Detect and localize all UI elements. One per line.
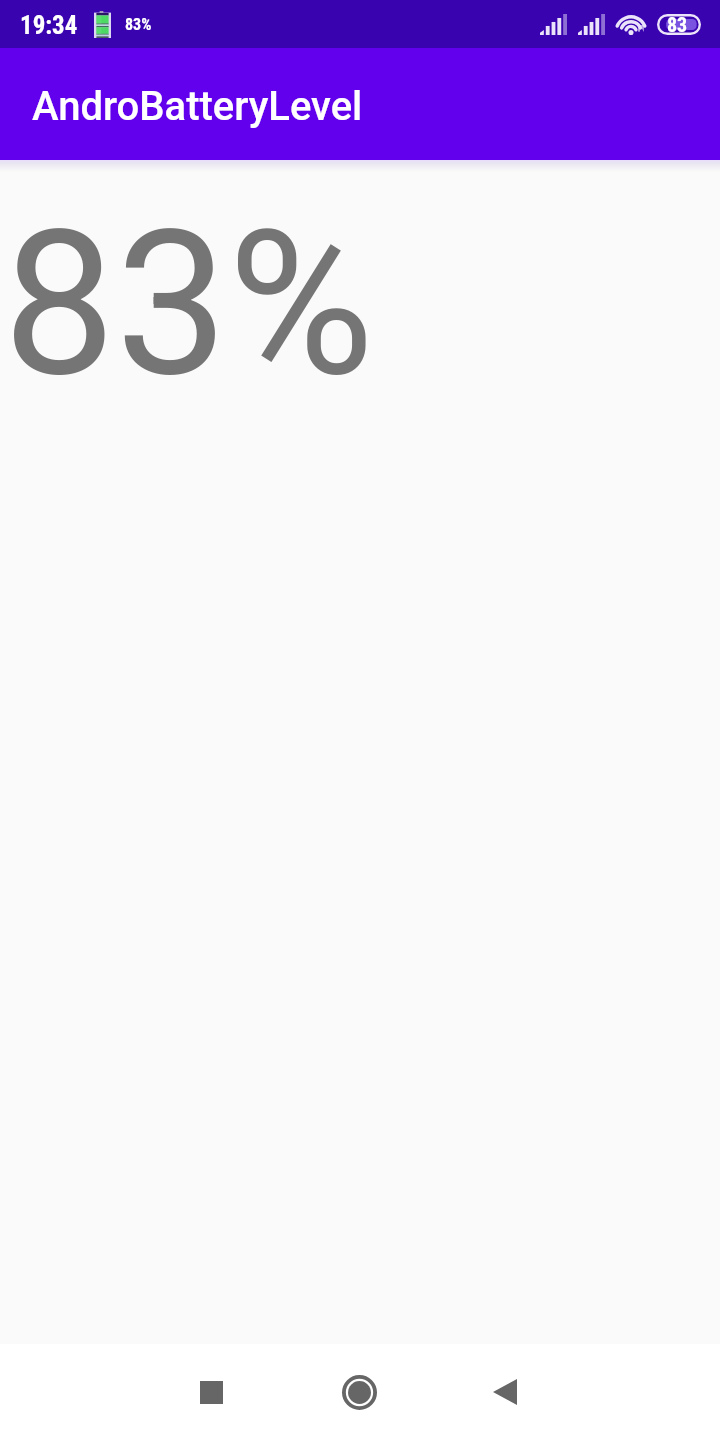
button[interactable]: Recent apps bbox=[163, 1344, 259, 1440]
staticText: 83% bbox=[3, 187, 375, 421]
staticText: 83 bbox=[667, 13, 688, 34]
staticText: 83% bbox=[125, 15, 152, 34]
button[interactable]: Back bbox=[457, 1344, 553, 1440]
staticText: AndroBatteryLevel bbox=[32, 83, 363, 130]
button[interactable]: Home bbox=[311, 1344, 407, 1440]
staticText: 19:34 bbox=[20, 11, 78, 40]
